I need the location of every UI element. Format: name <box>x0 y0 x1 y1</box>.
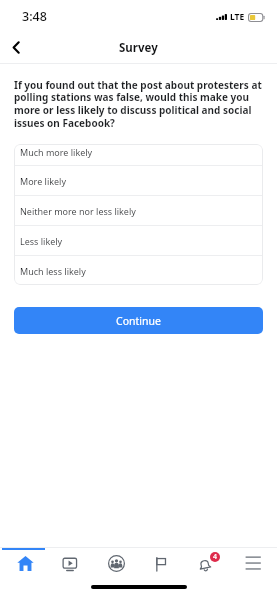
button[interactable]: Watch <box>49 548 91 579</box>
button[interactable]: More likely <box>14 166 263 195</box>
button[interactable]: Home <box>4 548 46 579</box>
button[interactable]: Menu <box>231 548 273 579</box>
staticText: Much more likely <box>20 146 93 158</box>
button[interactable]: Groups <box>95 548 137 579</box>
staticText: 4 <box>213 552 218 562</box>
staticText: More likely <box>20 175 66 187</box>
button[interactable]: Notifications <box>186 548 228 579</box>
button[interactable]: Pages <box>140 548 182 579</box>
button[interactable]: Neither more nor less likely <box>14 196 263 225</box>
button[interactable]: Continue <box>14 307 263 334</box>
button[interactable]: Much less likely <box>14 256 263 285</box>
staticText: LTE <box>230 11 245 23</box>
staticText: Much less likely <box>20 265 86 277</box>
staticText: Neither more nor less likely <box>20 205 136 217</box>
staticText: If you found out that the post about pro… <box>14 78 267 130</box>
button[interactable]: Much more likely <box>14 144 263 165</box>
staticText: Continue <box>116 314 161 328</box>
staticText: Survey <box>119 40 158 56</box>
staticText: 3:48 <box>22 8 47 25</box>
button[interactable]: Back <box>0 31 31 63</box>
button[interactable]: Less likely <box>14 226 263 255</box>
staticText: Less likely <box>20 235 63 247</box>
